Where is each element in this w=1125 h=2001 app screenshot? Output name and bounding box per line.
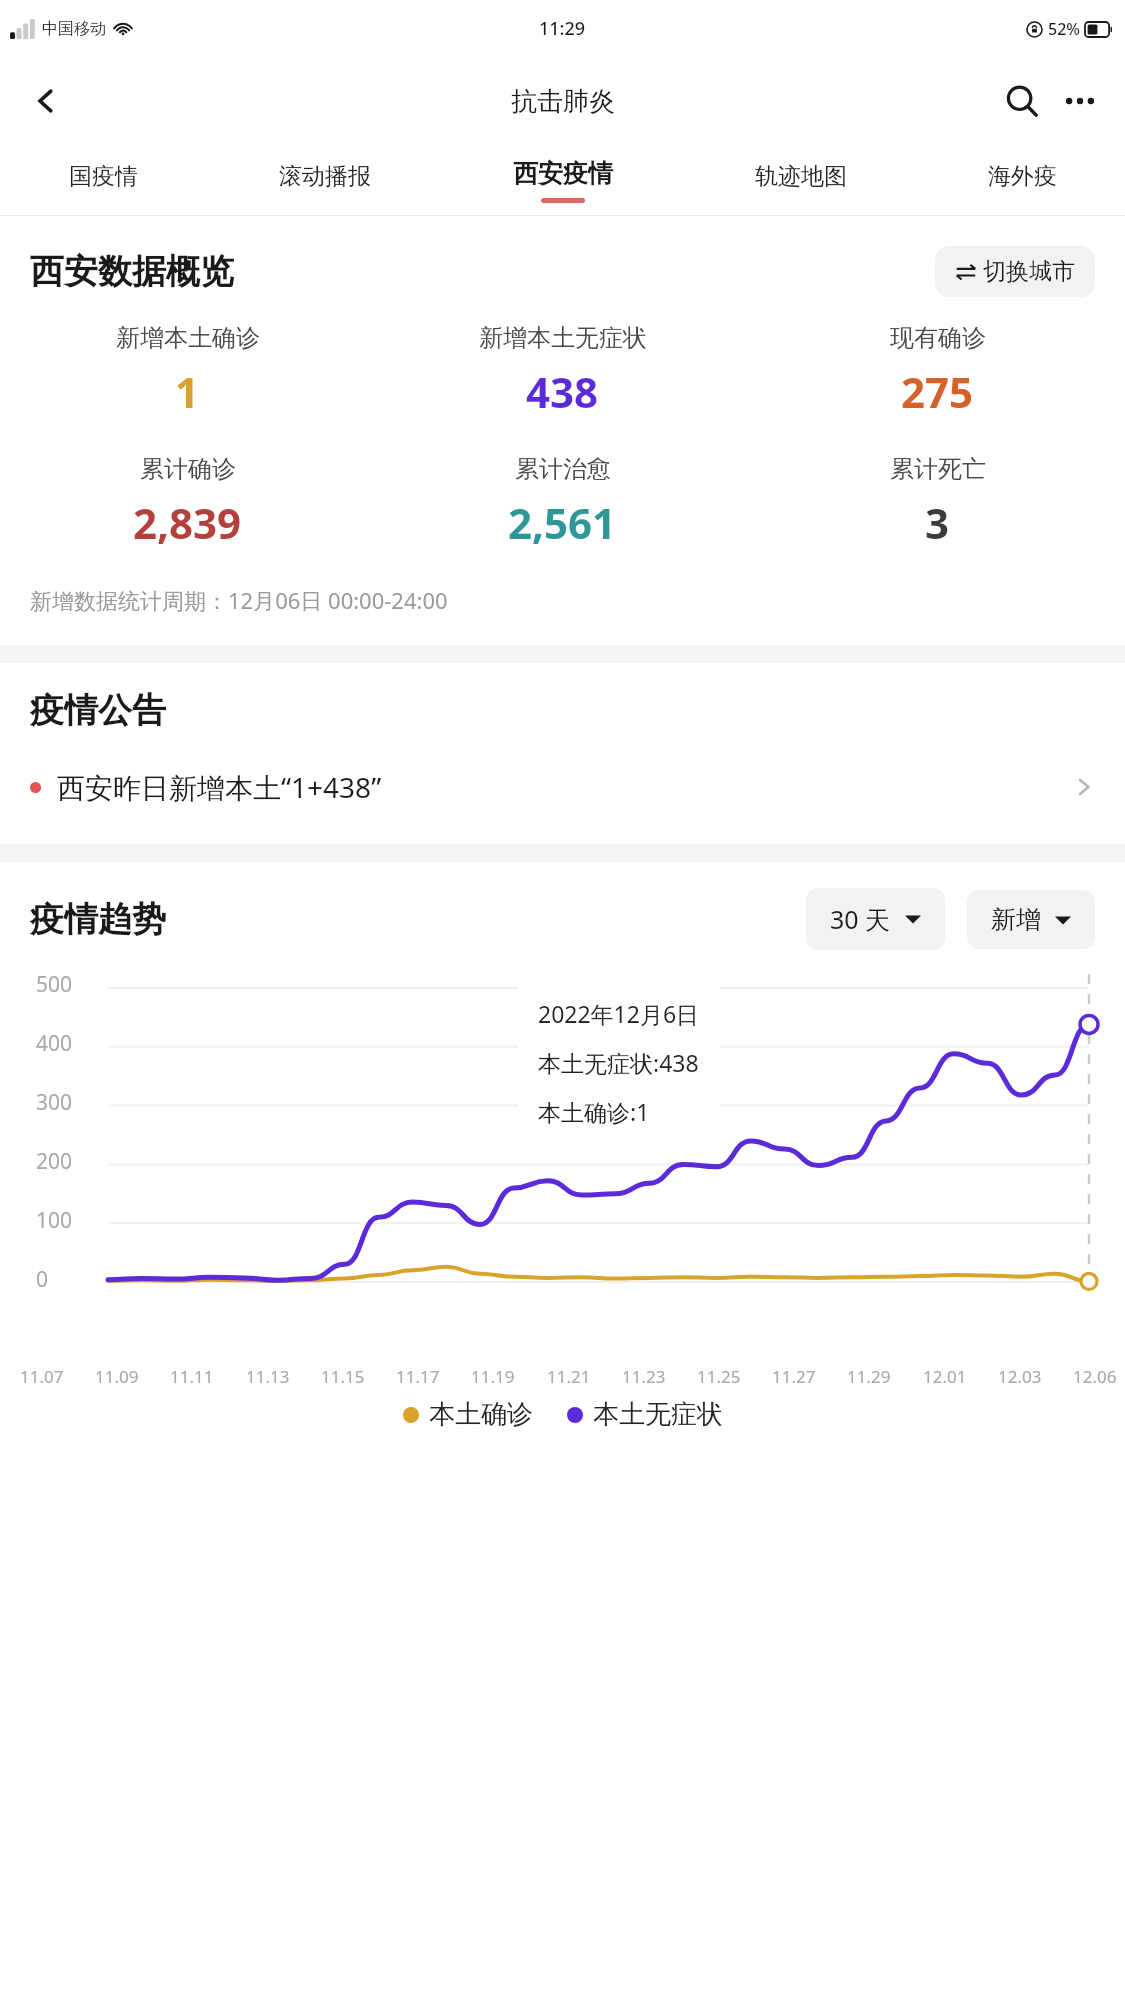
staticText: 2,839 bbox=[133, 494, 242, 551]
staticText: 累计死亡 bbox=[890, 454, 986, 484]
staticText: 11.29 bbox=[847, 1365, 891, 1388]
staticText: 11.11 bbox=[170, 1365, 214, 1388]
staticText: 11.19 bbox=[471, 1365, 515, 1388]
button[interactable]: 滚动播报 bbox=[206, 145, 444, 216]
staticText: 11.07 bbox=[20, 1365, 64, 1388]
staticText: 本土无症状 bbox=[593, 1398, 723, 1431]
staticText: 2022年12月6日 bbox=[538, 998, 700, 1029]
staticText: 11.09 bbox=[95, 1365, 139, 1388]
staticText: 3 bbox=[925, 494, 950, 551]
staticText: 海外疫 bbox=[988, 162, 1057, 191]
staticText: 11.17 bbox=[396, 1365, 440, 1388]
staticText: 11.27 bbox=[772, 1365, 816, 1388]
staticText: 1 bbox=[175, 363, 200, 420]
button[interactable]: 西安疫情 bbox=[444, 145, 682, 216]
staticText: 国疫情 bbox=[69, 162, 138, 191]
staticText: 轨迹地图 bbox=[755, 162, 847, 191]
staticText: 0 bbox=[36, 1265, 49, 1294]
staticText: 西安疫情 bbox=[513, 158, 613, 189]
staticText: 西安数据概览 bbox=[30, 250, 234, 293]
button[interactable]: Back bbox=[18, 73, 74, 129]
staticText: 累计确诊 bbox=[140, 454, 236, 484]
button[interactable]: Search bbox=[995, 74, 1049, 128]
staticText: 500 bbox=[36, 970, 73, 999]
staticText: 本土确诊:1 bbox=[538, 1096, 650, 1127]
button[interactable]: 西安昨日新增本土“1+438” bbox=[0, 756, 1125, 818]
staticText: 12.01 bbox=[923, 1365, 967, 1388]
button[interactable]: 30 天 bbox=[806, 888, 945, 950]
staticText: 西安昨日新增本土“1+438” bbox=[57, 768, 382, 806]
staticText: 12.03 bbox=[998, 1365, 1042, 1388]
staticText: 滚动播报 bbox=[279, 162, 371, 191]
staticText: 新增本土无症状 bbox=[479, 323, 647, 353]
staticText: 现有确诊 bbox=[890, 323, 986, 353]
staticText: 200 bbox=[36, 1147, 73, 1176]
staticText: 11.23 bbox=[622, 1365, 666, 1388]
staticText: 新增本土确诊 bbox=[116, 323, 260, 353]
staticText: 11.21 bbox=[547, 1365, 591, 1388]
staticText: 11:29 bbox=[539, 16, 586, 41]
button[interactable]: 切换城市 bbox=[935, 246, 1095, 297]
staticText: 52% bbox=[1048, 18, 1080, 40]
button[interactable]: 新增 bbox=[967, 890, 1095, 949]
staticText: 新增数据统计周期：12月06日 00:00-24:00 bbox=[30, 585, 448, 615]
staticText: 本土确诊 bbox=[429, 1398, 533, 1431]
staticText: 疫情趋势 bbox=[30, 898, 166, 941]
button[interactable]: 国疫情 bbox=[0, 145, 206, 216]
staticText: 抗击肺炎 bbox=[511, 85, 615, 118]
staticText: 疫情公告 bbox=[30, 689, 166, 732]
staticText: 11.15 bbox=[321, 1365, 365, 1388]
staticText: 11.25 bbox=[697, 1365, 741, 1388]
button[interactable]: 海外疫 bbox=[920, 145, 1125, 216]
staticText: 2,561 bbox=[508, 494, 617, 551]
staticText: 400 bbox=[36, 1029, 73, 1058]
staticText: 累计治愈 bbox=[515, 454, 611, 484]
staticText: 30 天 bbox=[830, 902, 891, 936]
staticText: 切换城市 bbox=[983, 257, 1075, 286]
staticText: 275 bbox=[901, 363, 974, 420]
button[interactable]: 轨迹地图 bbox=[682, 145, 920, 216]
staticText: 12.06 bbox=[1073, 1365, 1117, 1388]
staticText: 中国移动 bbox=[42, 19, 106, 39]
staticText: 新增 bbox=[991, 904, 1041, 935]
staticText: 300 bbox=[36, 1088, 73, 1117]
staticText: 本土无症状:438 bbox=[538, 1047, 699, 1078]
staticText: 11.13 bbox=[246, 1365, 290, 1388]
staticText: 438 bbox=[526, 363, 599, 420]
button[interactable]: More options bbox=[1055, 76, 1105, 126]
staticText: 100 bbox=[36, 1206, 73, 1235]
